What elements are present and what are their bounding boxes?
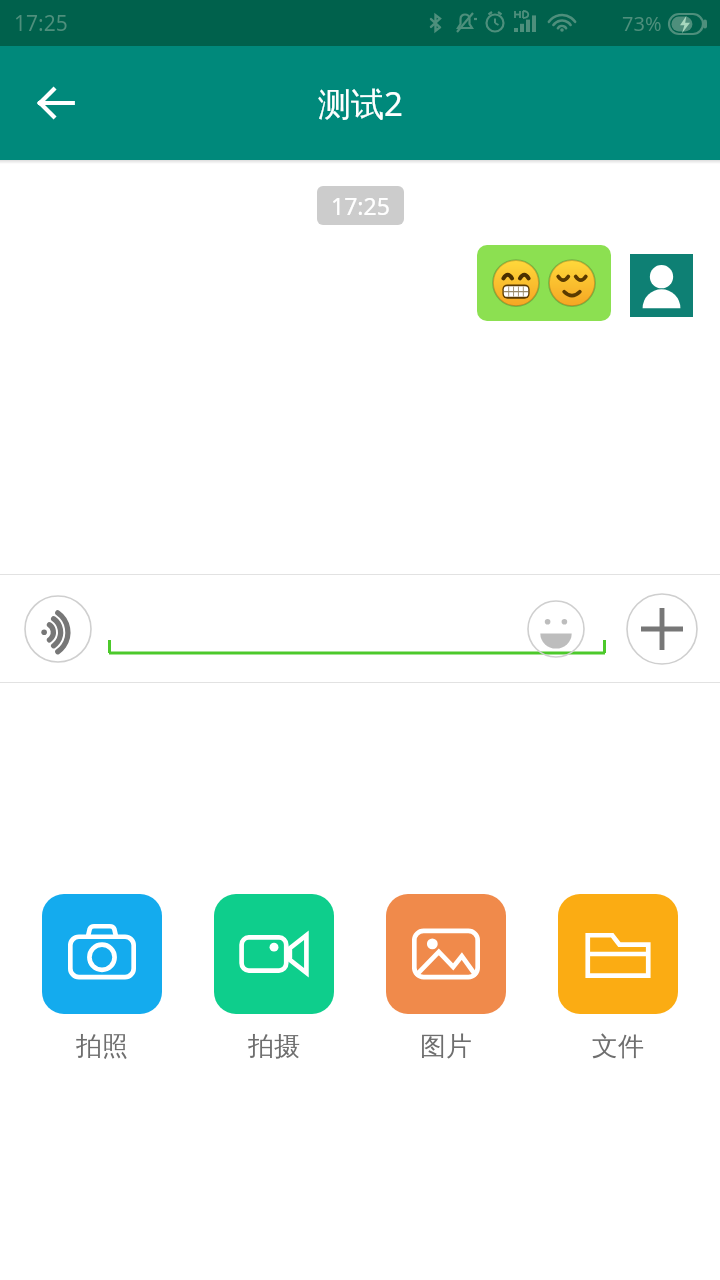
button[interactable]: Back — [22, 69, 90, 137]
button[interactable]: Voice message — [24, 595, 92, 663]
button[interactable]: 文件 — [548, 894, 688, 1063]
button[interactable]: 拍摄 — [204, 894, 344, 1063]
staticText: 图片 — [420, 1030, 472, 1063]
button[interactable] — [108, 589, 606, 669]
button[interactable]: 拍照 — [32, 894, 172, 1063]
staticText: 拍摄 — [248, 1030, 300, 1063]
staticText: 拍照 — [76, 1030, 128, 1063]
button[interactable] — [477, 245, 611, 321]
staticText: 17:25 — [14, 9, 68, 38]
staticText: 73% — [622, 10, 662, 37]
button[interactable]: 图片 — [376, 894, 516, 1063]
staticText: 测试2 — [318, 81, 403, 126]
button[interactable]: Emoji — [527, 600, 585, 658]
staticText: 文件 — [592, 1030, 644, 1063]
button[interactable]: More options — [626, 593, 698, 665]
staticText: 17:25 — [331, 190, 390, 221]
button[interactable]: Avatar — [630, 254, 693, 317]
